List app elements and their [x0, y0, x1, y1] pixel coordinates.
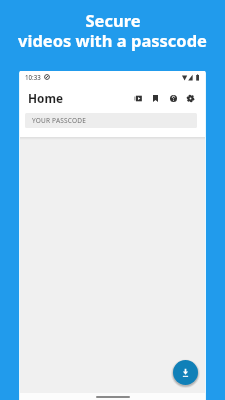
staticText: Secure [85, 9, 141, 31]
staticText: YOUR PASSCODE [32, 116, 87, 125]
button[interactable]: Settings [181, 89, 199, 107]
staticText: videos with a passcode [18, 29, 207, 51]
button[interactable]: YOUR PASSCODE [25, 113, 197, 128]
button[interactable]: Home [28, 90, 63, 106]
staticText: 10:33 [25, 73, 41, 81]
button[interactable]: Bookmarks [146, 89, 164, 107]
button[interactable]: Download [173, 360, 198, 385]
button[interactable]: Help [164, 89, 182, 107]
button[interactable]: Slideshow [129, 89, 147, 107]
